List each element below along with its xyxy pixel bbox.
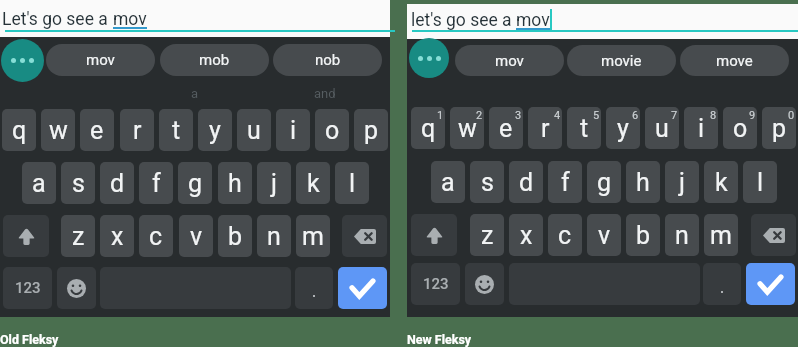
staticText: e xyxy=(499,114,513,143)
staticText: New Fleksy xyxy=(407,332,472,347)
button[interactable]: move xyxy=(680,45,789,76)
button[interactable]: Enter xyxy=(338,267,387,309)
button[interactable]: q xyxy=(411,107,445,149)
button[interactable]: g xyxy=(178,162,212,204)
staticText: 6 xyxy=(632,109,639,122)
button[interactable]: u xyxy=(237,109,271,151)
button[interactable]: Enter xyxy=(746,263,795,305)
button[interactable]: w xyxy=(450,107,484,149)
button[interactable]: p xyxy=(762,107,796,149)
staticText: 123 xyxy=(423,275,449,293)
button[interactable]: m xyxy=(296,215,330,257)
button[interactable]: mob xyxy=(160,44,269,76)
staticText: mov xyxy=(113,9,147,30)
button[interactable]: z xyxy=(61,215,95,257)
button[interactable]: Period xyxy=(295,267,333,309)
button[interactable]: w xyxy=(41,109,75,151)
button[interactable]: i xyxy=(276,109,310,151)
button[interactable]: Shift xyxy=(3,215,49,257)
button[interactable]: l xyxy=(743,161,777,203)
button[interactable]: More suggestions xyxy=(1,39,44,82)
button[interactable]: v xyxy=(179,215,213,257)
button[interactable]: c xyxy=(139,215,173,257)
button[interactable]: s xyxy=(61,162,95,204)
staticText: r xyxy=(133,116,142,145)
button[interactable]: h xyxy=(218,162,252,204)
button[interactable]: Numbers xyxy=(3,267,52,309)
staticText: i xyxy=(698,114,705,143)
button[interactable]: t xyxy=(567,107,601,149)
button[interactable]: o xyxy=(723,107,757,149)
button[interactable]: k xyxy=(296,162,330,204)
button[interactable]: Backspace xyxy=(751,214,796,256)
staticText: e xyxy=(90,116,104,145)
button[interactable]: h xyxy=(626,161,660,203)
staticText: d xyxy=(519,168,534,197)
button[interactable]: Emoji xyxy=(465,263,504,305)
button[interactable]: y xyxy=(198,109,232,151)
button[interactable]: b xyxy=(218,215,252,257)
button[interactable]: a xyxy=(431,161,465,203)
staticText: m xyxy=(710,221,732,250)
staticText: a xyxy=(441,168,455,197)
staticText: movie xyxy=(601,52,642,70)
button[interactable]: Numbers xyxy=(411,263,460,305)
staticText: v xyxy=(598,221,611,250)
button[interactable]: z xyxy=(470,214,504,256)
button[interactable]: e xyxy=(80,109,114,151)
staticText: Old Fleksy xyxy=(0,332,59,347)
button[interactable]: Backspace xyxy=(342,215,387,257)
button[interactable]: t xyxy=(159,109,193,151)
button[interactable]: b xyxy=(626,214,660,256)
staticText: b xyxy=(636,221,651,250)
button[interactable]: Shift xyxy=(411,214,457,256)
button[interactable]: e xyxy=(489,107,523,149)
button[interactable]: x xyxy=(509,214,543,256)
staticText: t xyxy=(172,116,181,145)
button[interactable]: f xyxy=(139,162,173,204)
button[interactable]: x xyxy=(100,215,134,257)
button[interactable]: y xyxy=(606,107,640,149)
button[interactable]: c xyxy=(548,214,582,256)
button[interactable]: d xyxy=(509,161,543,203)
staticText: x xyxy=(520,221,533,250)
staticText: j xyxy=(271,169,277,198)
button[interactable]: u xyxy=(645,107,679,149)
staticText: m xyxy=(302,222,324,251)
staticText: s xyxy=(481,168,494,197)
button[interactable]: k xyxy=(704,161,738,203)
button[interactable]: g xyxy=(587,161,621,203)
button[interactable]: l xyxy=(335,162,369,204)
button[interactable]: a xyxy=(22,162,56,204)
staticText: b xyxy=(228,222,243,251)
button[interactable]: n xyxy=(257,215,291,257)
button[interactable]: mov xyxy=(455,45,564,76)
button[interactable]: q xyxy=(2,109,36,151)
button[interactable]: More suggestions xyxy=(409,38,449,78)
button[interactable]: movie xyxy=(567,45,676,76)
button[interactable]: r xyxy=(528,107,562,149)
button[interactable]: v xyxy=(587,214,621,256)
staticText: 4 xyxy=(554,109,561,122)
button[interactable]: nob xyxy=(273,44,382,76)
staticText: i xyxy=(290,116,297,145)
staticText: move xyxy=(716,52,753,70)
button[interactable]: s xyxy=(470,161,504,203)
button[interactable]: p xyxy=(354,109,388,151)
staticText: Let's go see a xyxy=(2,9,113,30)
button[interactable]: j xyxy=(665,161,699,203)
button[interactable]: n xyxy=(665,214,699,256)
button[interactable]: o xyxy=(315,109,349,151)
button[interactable]: j xyxy=(257,162,291,204)
button[interactable]: Period xyxy=(703,263,741,305)
button[interactable]: r xyxy=(120,109,154,151)
button[interactable]: Emoji xyxy=(57,267,96,309)
button[interactable]: i xyxy=(684,107,718,149)
button[interactable]: mov xyxy=(46,44,155,76)
button[interactable]: d xyxy=(100,162,134,204)
button[interactable]: f xyxy=(548,161,582,203)
button[interactable]: m xyxy=(704,214,738,256)
staticText: f xyxy=(152,169,161,198)
